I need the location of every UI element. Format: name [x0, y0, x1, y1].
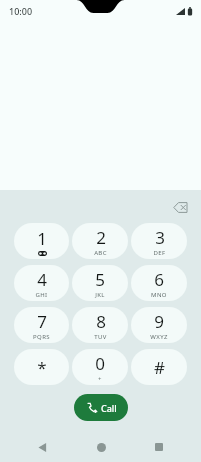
staticText: 2 — [96, 226, 106, 249]
staticText: 5 — [95, 268, 105, 291]
button[interactable]: 9 — [131, 307, 187, 343]
staticText: 6 — [154, 268, 164, 291]
button[interactable]: 7 — [14, 307, 69, 343]
staticText: 3 — [155, 226, 165, 249]
staticText: 9 — [154, 310, 164, 333]
button[interactable]: 6 — [131, 265, 187, 301]
button[interactable]: 8 — [72, 307, 128, 343]
staticText: GHI — [35, 291, 48, 299]
button[interactable]: # — [131, 349, 187, 385]
button[interactable]: Back — [25, 432, 59, 462]
staticText: TUV — [94, 333, 107, 341]
button[interactable]: 2 — [72, 223, 128, 259]
staticText: * — [37, 356, 47, 379]
button[interactable]: Backspace — [167, 194, 193, 220]
button[interactable]: 3 — [131, 223, 187, 259]
button[interactable]: 0 — [72, 349, 128, 385]
staticText: 8 — [96, 310, 106, 333]
staticText: ABC — [94, 249, 107, 257]
button[interactable]: 5 — [72, 265, 128, 301]
button[interactable]: 4 — [14, 265, 69, 301]
button[interactable]: Recent apps — [142, 432, 176, 462]
button[interactable]: * — [14, 349, 69, 385]
button[interactable]: 1 — [14, 223, 69, 259]
staticText: JKL — [95, 291, 105, 299]
button[interactable]: Home — [84, 432, 118, 462]
staticText: PQRS — [33, 333, 50, 341]
staticText: 0 — [95, 352, 105, 375]
staticText: MNO — [151, 291, 167, 299]
staticText: 4 — [37, 268, 47, 291]
staticText: 1 — [37, 227, 47, 250]
staticText: 7 — [37, 310, 47, 333]
staticText: Call — [101, 402, 117, 414]
button[interactable]: Call — [74, 394, 128, 421]
staticText: WXYZ — [150, 333, 168, 341]
staticText: + — [98, 375, 102, 383]
staticText: 10:00 — [9, 5, 33, 17]
staticText: DEF — [153, 249, 166, 257]
staticText: # — [154, 356, 165, 379]
